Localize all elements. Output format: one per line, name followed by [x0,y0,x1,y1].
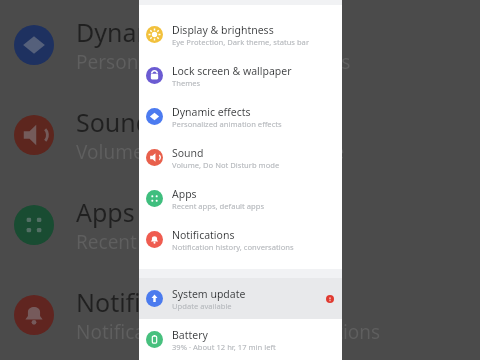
button[interactable]: Lock screen & wallpaper [139,55,342,96]
staticText: Eye Protection, Dark theme, status bar [172,37,310,47]
staticText: Notifications [172,228,235,242]
staticText: Notifications [76,285,225,319]
staticText: Display & brightness [172,23,274,37]
staticText: Themes [172,78,201,88]
staticText: Notification history, conversations [76,319,381,345]
staticText: Volume, Do Not Disturb mode [76,139,345,165]
staticText: Battery [172,328,208,342]
staticText: Notification history, conversations [172,242,294,252]
staticText: System update [172,287,246,301]
staticText: Recent apps, default apps [76,229,307,255]
staticText: Apps [76,195,135,229]
staticText: Volume, Do Not Disturb mode [172,160,280,170]
staticText: Personalized animation effects [76,49,351,75]
button[interactable]: Battery [139,319,342,360]
staticText: Update available [172,301,232,311]
staticText: Sound [172,146,204,160]
button[interactable]: Sound [139,137,342,178]
staticText: Personalized animation effects [172,119,282,129]
staticText: Recent apps, default apps [172,201,265,211]
staticText: Apps [172,187,197,201]
staticText: 39% · About 12 hr, 17 min left [172,342,276,352]
button[interactable]: System update [139,278,342,319]
staticText: Dynamic effects [172,105,251,119]
staticText: Dynamic effects [76,15,264,49]
staticText: Lock screen & wallpaper [172,64,292,78]
button[interactable]: Notifications [139,219,342,260]
button[interactable]: Display & brightness [139,14,342,55]
button[interactable]: Apps [139,178,342,219]
button[interactable]: Dynamic effects [139,96,342,137]
staticText: Sound [76,105,152,139]
